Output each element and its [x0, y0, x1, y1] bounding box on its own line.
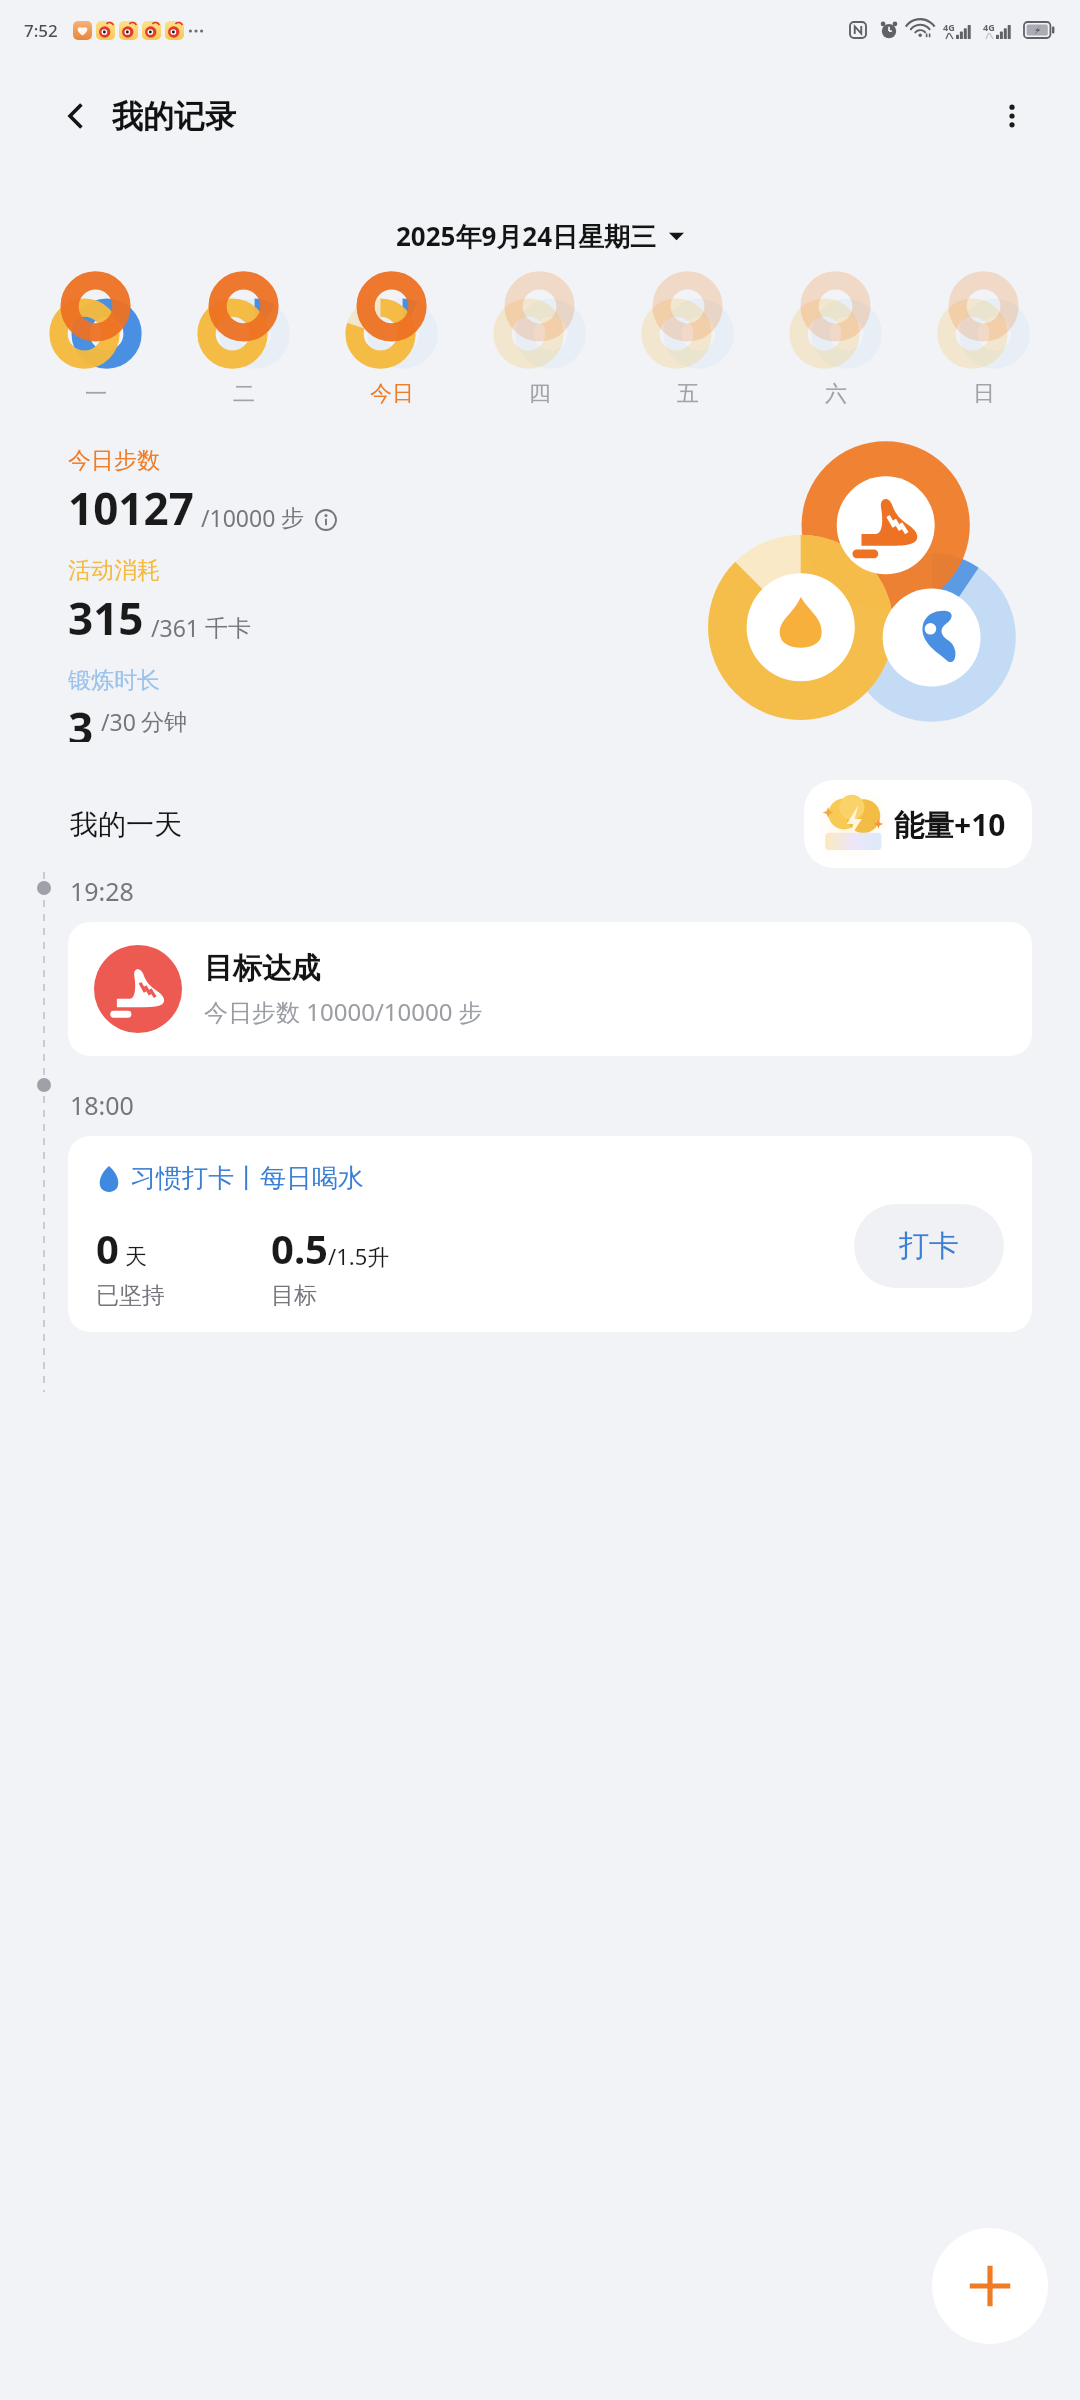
staticText: 我的一天 — [70, 807, 182, 842]
staticText: 今日步数 10000/10000 步 — [204, 995, 483, 1028]
button[interactable]: 锻炼时长 — [68, 666, 187, 742]
staticText: 分钟 — [141, 708, 187, 737]
staticText: 打卡 — [899, 1227, 959, 1265]
button[interactable]: 今日 — [318, 276, 466, 408]
staticText: 7:52 — [24, 19, 58, 42]
staticText: 六 — [825, 380, 847, 408]
staticText: 千卡 — [205, 614, 251, 643]
button[interactable]: 四 — [466, 276, 614, 408]
staticText: 3 — [68, 698, 94, 742]
staticText: 目标 — [271, 1281, 317, 1310]
staticText: 二 — [233, 380, 255, 408]
staticText: 今日步数 — [68, 446, 160, 475]
staticText: 4G — [983, 21, 995, 33]
staticText: 2025年9月24日星期三 — [396, 218, 657, 254]
staticText: 活动消耗 — [68, 556, 160, 585]
staticText: 4G — [943, 21, 955, 33]
button[interactable]: 添加记录 — [932, 2228, 1048, 2344]
staticText: 四 — [529, 380, 551, 408]
staticText: 天 — [125, 1243, 147, 1271]
staticText: 已坚持 — [96, 1281, 165, 1310]
staticText: 习惯打卡丨每日喝水 — [130, 1162, 364, 1195]
staticText: 10127 — [68, 478, 194, 538]
button[interactable]: 今日步数 — [68, 446, 338, 538]
button[interactable]: 一 — [22, 276, 170, 408]
button[interactable]: 五 — [614, 276, 762, 408]
staticText: /30 — [101, 706, 136, 737]
staticText: 0 — [96, 1221, 119, 1275]
button[interactable]: 二 — [170, 276, 318, 408]
staticText: 19:28 — [70, 874, 134, 908]
staticText: 315 — [68, 588, 144, 648]
staticText: /10000 — [201, 502, 276, 533]
staticText: 五 — [677, 380, 699, 408]
staticText: 我的记录 — [112, 97, 236, 136]
staticText: 0.5 — [271, 1221, 328, 1275]
button[interactable]: 习惯打卡丨每日喝水 — [68, 1136, 1032, 1332]
button[interactable]: 活动消耗 — [68, 556, 251, 648]
button[interactable]: 步数说明 — [314, 508, 338, 532]
button[interactable]: 日 — [910, 276, 1058, 408]
staticText: 18:00 — [70, 1088, 134, 1122]
staticText: 步 — [281, 504, 304, 533]
button[interactable]: 六 — [762, 276, 910, 408]
staticText: 日 — [973, 380, 995, 408]
button[interactable]: 打卡 — [854, 1204, 1004, 1288]
staticText: 锻炼时长 — [68, 666, 160, 695]
staticText: 一 — [85, 380, 107, 408]
button[interactable]: 返回 — [48, 88, 104, 144]
staticText: 能量+10 — [894, 804, 1006, 845]
button[interactable]: 2025年9月24日星期三 — [0, 218, 1080, 254]
button[interactable]: 目标达成 — [68, 922, 1032, 1056]
button[interactable]: 能量+10 — [804, 780, 1032, 868]
staticText: /1.5升 — [328, 1241, 390, 1271]
staticText: 今日 — [370, 380, 414, 408]
staticText: 目标达成 — [204, 950, 320, 987]
button[interactable]: 更多选项 — [984, 88, 1040, 144]
staticText: /361 — [151, 612, 200, 643]
